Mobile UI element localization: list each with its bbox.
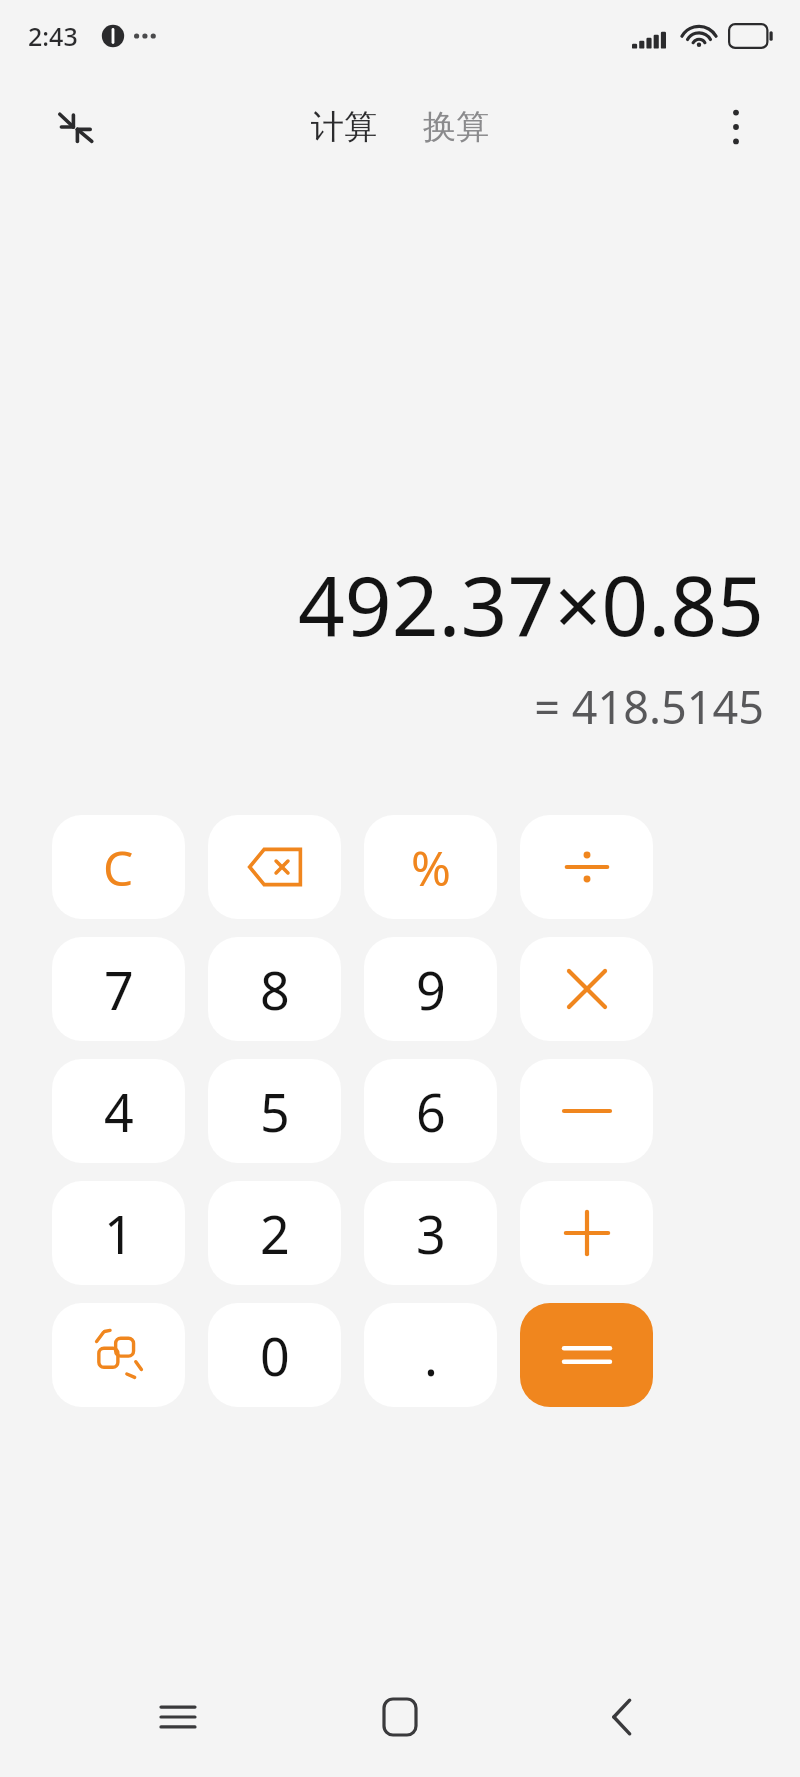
staticText: C — [103, 835, 134, 900]
button[interactable]: Back — [578, 1673, 666, 1761]
button[interactable]: Equals — [520, 1303, 653, 1407]
staticText: 2:43 — [28, 19, 78, 53]
staticText: 3 — [416, 1198, 446, 1269]
button[interactable]: 4 — [52, 1059, 185, 1163]
button[interactable]: Divide — [520, 815, 653, 919]
staticText: 1 — [104, 1198, 134, 1269]
staticText: 8 — [260, 954, 290, 1025]
button[interactable]: Subtract — [520, 1059, 653, 1163]
button[interactable]: 1 — [52, 1181, 185, 1285]
button[interactable]: Delete — [208, 815, 341, 919]
staticText: 4 — [104, 1076, 134, 1147]
button[interactable]: Scientific — [52, 1303, 185, 1407]
staticText: 2 — [260, 1198, 290, 1269]
staticText: 7 — [104, 954, 134, 1025]
staticText: % — [411, 835, 451, 900]
button[interactable]: 7 — [52, 937, 185, 1041]
button[interactable]: % — [364, 815, 497, 919]
button[interactable]: Multiply — [520, 937, 653, 1041]
staticText: 9 — [416, 954, 446, 1025]
staticText: 5 — [260, 1076, 290, 1147]
staticText: 6 — [416, 1076, 446, 1147]
button[interactable]: 9 — [364, 937, 497, 1041]
button[interactable]: 6 — [364, 1059, 497, 1163]
button[interactable]: 5 — [208, 1059, 341, 1163]
button[interactable]: More options — [706, 97, 766, 157]
staticText: 492.37×0.85 — [297, 548, 764, 660]
button[interactable]: Recents — [134, 1673, 222, 1761]
staticText: 换算 — [423, 106, 489, 148]
button[interactable]: 3 — [364, 1181, 497, 1285]
button[interactable]: Home — [356, 1673, 444, 1761]
button[interactable]: 2 — [208, 1181, 341, 1285]
staticText: = 418.5145 — [534, 676, 764, 737]
button[interactable]: Collapse — [44, 96, 106, 158]
staticText: . — [424, 1320, 438, 1391]
button[interactable]: 换算 — [413, 98, 499, 156]
button[interactable]: . — [364, 1303, 497, 1407]
staticText: 计算 — [311, 106, 377, 148]
button[interactable]: 0 — [208, 1303, 341, 1407]
button[interactable]: C — [52, 815, 185, 919]
button[interactable]: 8 — [208, 937, 341, 1041]
staticText: 0 — [260, 1320, 290, 1391]
button[interactable]: 计算 — [301, 98, 387, 156]
button[interactable]: Add — [520, 1181, 653, 1285]
